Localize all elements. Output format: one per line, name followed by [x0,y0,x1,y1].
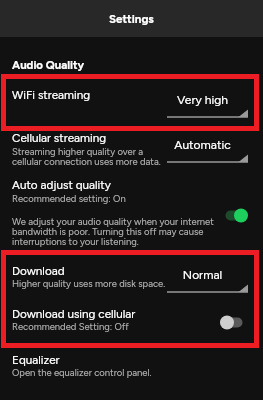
button[interactable]: WiFi streaming [0,78,263,124]
staticText: Download using cellular [12,307,136,321]
button[interactable]: Very high [167,93,248,118]
staticText: Open the equalizer control panel. [12,367,152,378]
button[interactable]: Auto adjust quality [0,175,263,250]
staticText: Auto adjust quality [12,178,111,192]
button[interactable]: Cellular streaming [0,128,263,172]
staticText: Higher quality uses more disk space. [12,278,166,289]
staticText: Audio Quality [12,58,85,72]
staticText: Streaming higher quality over a cellular… [12,146,161,167]
staticText: Normal [167,268,238,282]
staticText: Cellular streaming [12,131,107,145]
staticText: Equalizer [12,353,60,367]
staticText: We adjust your audio quality when your i… [12,216,228,247]
staticText: Recommended setting: On [12,193,126,204]
button[interactable]: Switch off [220,315,243,330]
staticText: Very high [167,93,238,107]
button[interactable]: Download using cellular [0,303,263,339]
button[interactable]: Automatic [167,138,248,163]
button[interactable]: Download [0,258,263,298]
button[interactable]: Switch on [225,208,248,223]
staticText: Download [12,264,65,278]
staticText: Settings [109,12,154,26]
staticText: WiFi streaming [12,88,91,102]
button[interactable]: Normal [167,268,248,293]
staticText: Recommended Setting: Off [12,321,129,332]
button[interactable]: Settings [0,0,263,37]
button[interactable]: Equalizer [0,349,263,389]
staticText: Automatic [167,138,238,152]
